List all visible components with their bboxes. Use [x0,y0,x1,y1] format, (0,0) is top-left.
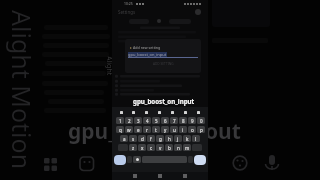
button[interactable]: u [170,126,178,133]
staticText: Alight Motion [104,56,114,100]
staticText: c [150,145,153,151]
button[interactable]: r [143,126,151,133]
button[interactable]: 2 [125,117,133,124]
button[interactable]: 3 [134,117,142,124]
staticText: 5 [155,118,158,124]
staticText: ADD SETTING [153,62,174,66]
button[interactable]: i [179,126,187,133]
button[interactable]: 9 [188,117,196,124]
button[interactable]: o [188,126,196,133]
staticText: k [186,136,189,142]
staticText: 3 [137,118,140,124]
staticText: Add new setting [133,45,161,50]
button[interactable]: ADD SETTING [150,61,177,67]
staticText: x [141,145,144,151]
button[interactable]: t [152,126,160,133]
button[interactable]: Emoji [133,156,141,163]
staticText: q [119,127,122,133]
button[interactable]: y [161,126,169,133]
button[interactable]: Comma [127,156,132,163]
button[interactable]: d [138,135,146,142]
staticText: 2 [128,118,131,124]
button[interactable]: Enter [194,155,206,165]
staticText: 10:25 [124,1,133,6]
staticText: gpu_boost_on_input [133,97,195,105]
button[interactable]: b [165,144,173,151]
button[interactable]: l [192,135,200,142]
button[interactable]: Tool [132,111,135,114]
button[interactable]: Tool [197,111,200,114]
button[interactable]: v [156,144,164,151]
button[interactable]: e [134,126,142,133]
button[interactable]: a [120,135,128,142]
staticText: s [132,136,135,142]
staticText: a [123,136,126,142]
button[interactable]: n [174,144,182,151]
staticText: w [127,127,131,133]
staticText: 6 [164,118,167,124]
staticText: d [141,136,144,142]
button[interactable]: 5 [152,117,160,124]
button[interactable]: q [116,126,124,133]
button[interactable]: 6 [161,117,169,124]
button[interactable]: j [174,135,182,142]
button[interactable]: Tool [145,111,148,114]
button[interactable]: Period [188,156,193,163]
staticText: 0 [200,118,203,124]
staticText: b [168,145,171,151]
staticText: n [177,145,180,151]
button[interactable]: z [129,144,137,151]
button[interactable]: p [197,126,205,133]
button[interactable]: f [147,135,155,142]
button[interactable]: 1 [116,117,124,124]
staticText: m [185,145,190,151]
staticText: i [182,127,184,133]
button[interactable]: Tool [120,111,123,114]
button[interactable]: 4 [143,117,151,124]
staticText: v [159,145,162,151]
button[interactable]: x [138,144,146,151]
staticText: out [205,117,241,146]
button[interactable]: 0 [197,117,205,124]
staticText: r [146,127,148,133]
staticText: l [195,136,197,142]
staticText: u [173,127,176,133]
staticText: f [150,136,152,142]
staticText: 1 [119,118,122,124]
staticText: o [191,127,194,133]
button[interactable]: Symbols [114,155,126,165]
button[interactable]: h [165,135,173,142]
staticText: gpu_boost_on_input [128,52,167,57]
button[interactable]: w [125,126,133,133]
staticText: e [137,127,140,133]
staticText: y [164,127,167,133]
button[interactable]: m [183,144,191,151]
button[interactable]: s [129,135,137,142]
staticText: t [155,127,157,133]
button[interactable]: c [147,144,155,151]
button[interactable]: Tool [158,111,161,114]
staticText: 9 [191,118,194,124]
staticText: h [168,136,171,142]
staticText: Settings [118,9,136,15]
button[interactable]: g [156,135,164,142]
staticText: Alight Motion [5,10,39,170]
staticText: 4 [146,118,149,124]
button[interactable]: Tool [171,111,174,114]
staticText: gpu_ [68,117,117,146]
staticText: p [200,127,203,133]
button[interactable]: 8 [179,117,187,124]
button[interactable]: Tool [184,111,187,114]
staticText: g [159,136,162,142]
button[interactable]: k [183,135,191,142]
button[interactable]: Profile [195,9,201,15]
button[interactable]: 7 [170,117,178,124]
